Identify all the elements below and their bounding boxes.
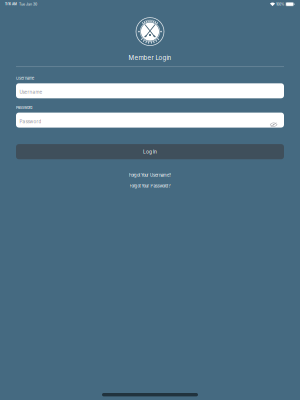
staticText: Log In: [143, 149, 157, 155]
staticText: 100%: [276, 2, 284, 6]
staticText: Member Login: [128, 54, 171, 61]
staticText: Username: [16, 76, 34, 81]
button[interactable]: Forgot Your Username?: [121, 171, 179, 180]
staticText: Forgot Your Username?: [129, 173, 171, 178]
button[interactable]: Show password: [267, 113, 281, 127]
staticText: 11:16 AM: [5, 2, 17, 6]
staticText: Forgot Your Password?: [129, 184, 170, 189]
button[interactable]: Forgot Your Password?: [121, 182, 178, 191]
staticText: Password: [16, 105, 32, 110]
staticText: Tue Jan 30: [19, 2, 37, 6]
staticText: Password: [19, 119, 41, 124]
button[interactable]: Log In: [16, 144, 284, 159]
staticText: Username: [19, 89, 42, 95]
